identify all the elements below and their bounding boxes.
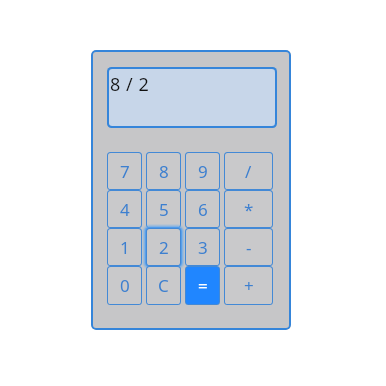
button[interactable]: Calculator display: [109, 69, 275, 126]
staticText: 6: [198, 198, 208, 221]
button[interactable]: =: [186, 267, 219, 304]
staticText: 1: [120, 236, 130, 259]
button[interactable]: C: [147, 267, 180, 304]
button[interactable]: 7: [108, 153, 141, 189]
staticText: -: [246, 236, 252, 259]
staticText: C: [158, 274, 169, 297]
staticText: 3: [198, 236, 208, 259]
staticText: 4: [120, 198, 130, 221]
button[interactable]: 0: [108, 267, 141, 304]
staticText: 2: [159, 236, 169, 259]
button[interactable]: 6: [186, 191, 219, 227]
button[interactable]: 4: [108, 191, 141, 227]
staticText: 5: [159, 198, 169, 221]
staticText: 7: [120, 160, 130, 183]
button[interactable]: 2: [147, 229, 180, 265]
button[interactable]: +: [225, 267, 272, 304]
staticText: 8 / 2: [110, 72, 150, 97]
staticText: 8: [159, 160, 169, 183]
staticText: 0: [120, 274, 130, 297]
staticText: *: [244, 198, 254, 221]
staticText: =: [198, 274, 208, 297]
button[interactable]: 8: [147, 153, 180, 189]
button[interactable]: *: [225, 191, 272, 227]
button[interactable]: 5: [147, 191, 180, 227]
button[interactable]: /: [225, 153, 272, 189]
staticText: 9: [198, 160, 208, 183]
staticText: +: [244, 274, 254, 297]
button[interactable]: 3: [186, 229, 219, 265]
staticText: /: [245, 160, 252, 183]
button[interactable]: 9: [186, 153, 219, 189]
button[interactable]: -: [225, 229, 272, 265]
button[interactable]: 1: [108, 229, 141, 265]
